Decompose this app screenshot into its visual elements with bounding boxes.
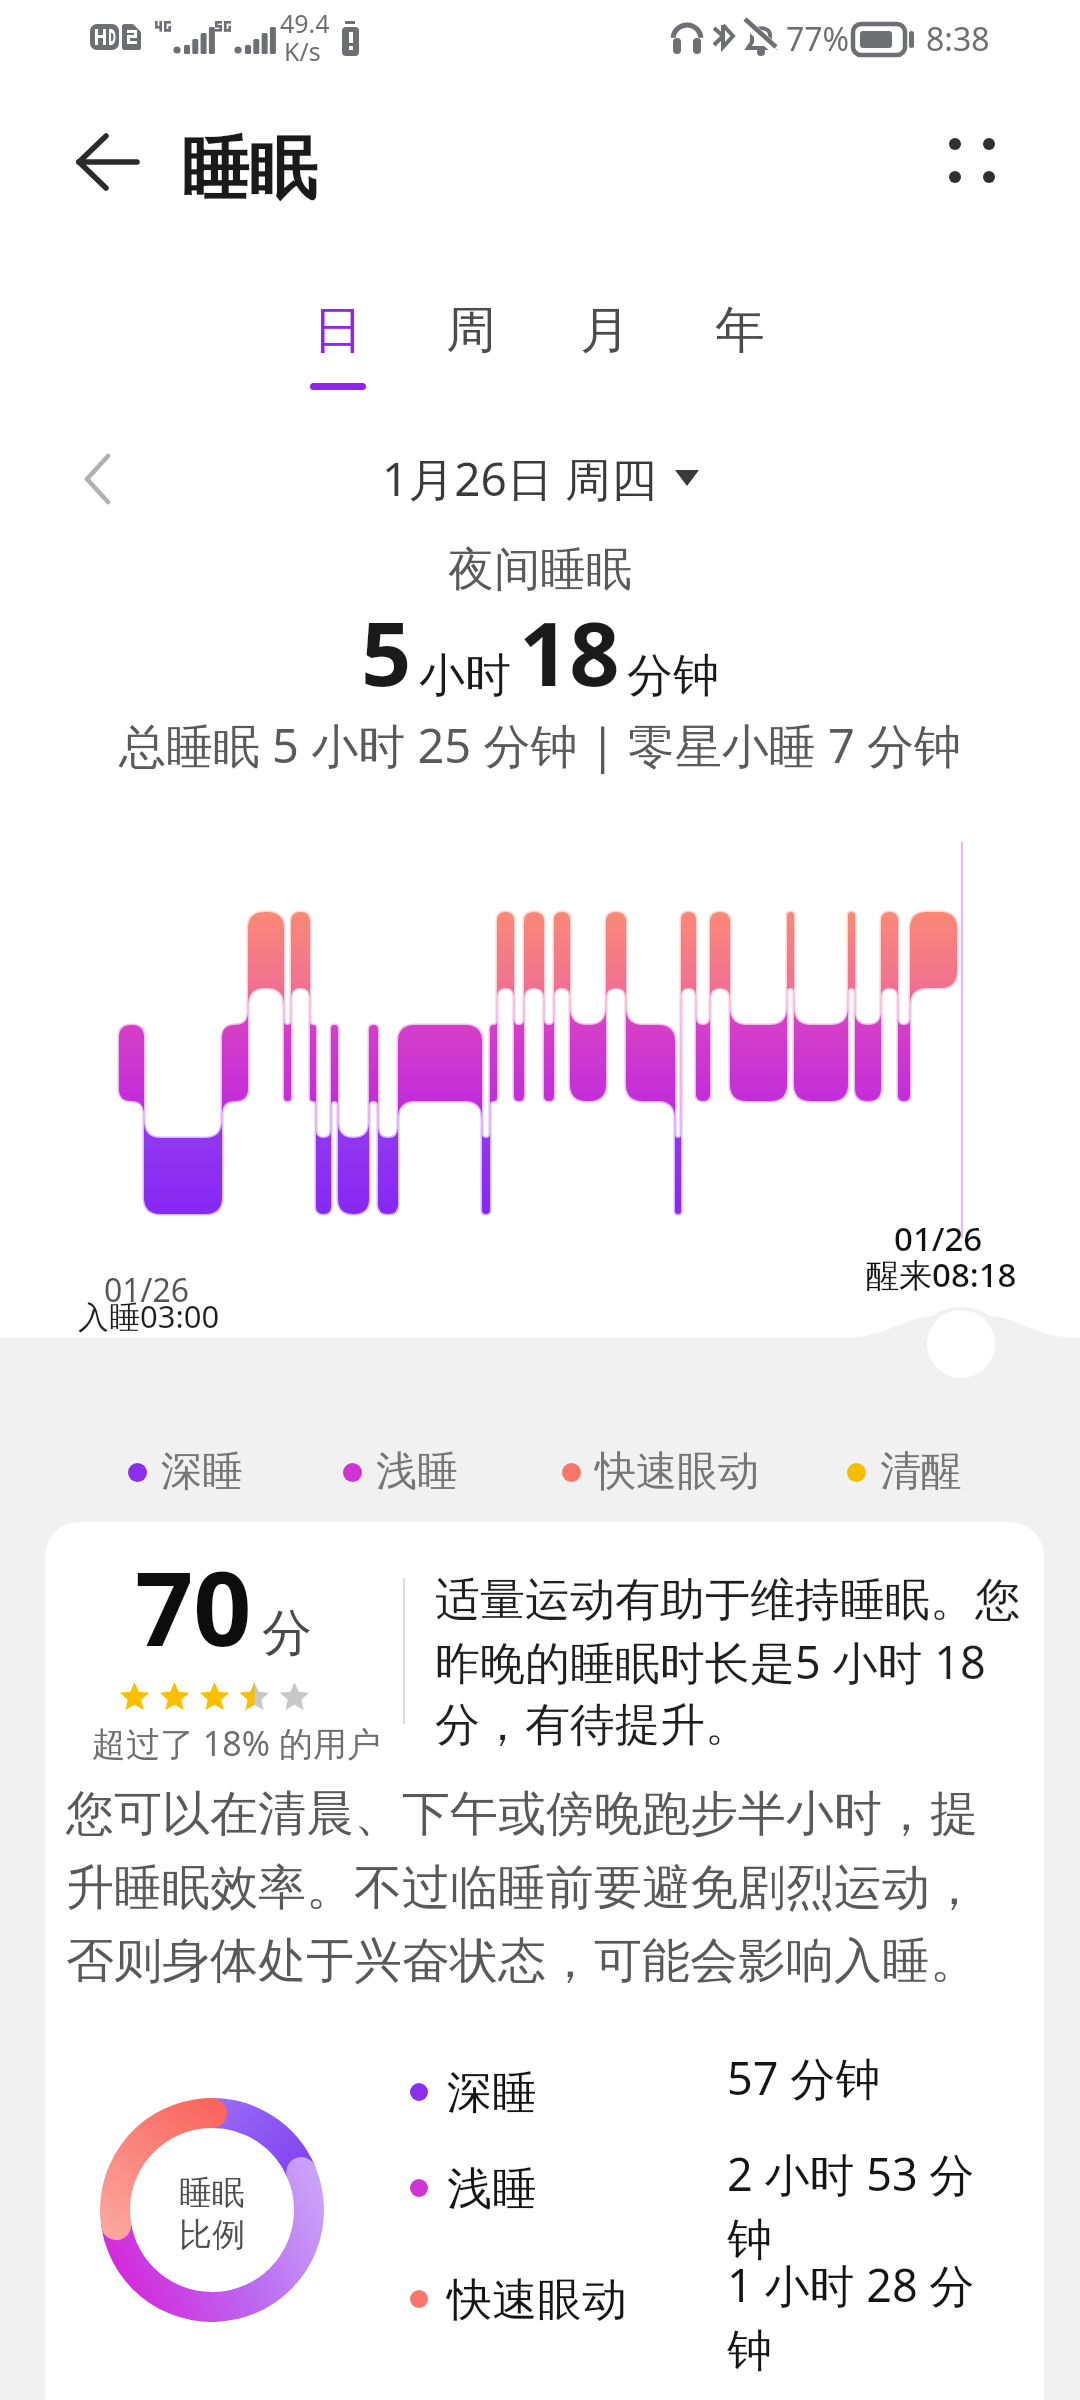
button[interactable]: 1月26日 周四 bbox=[0, 442, 1080, 514]
button[interactable]: 周 bbox=[415, 299, 527, 403]
staticText: 深睡 bbox=[161, 1446, 243, 1498]
staticText: 快速眼动 bbox=[595, 1446, 759, 1498]
staticText: 超过了 18% 的用户 bbox=[92, 1720, 381, 1766]
button[interactable]: More options bbox=[930, 122, 1016, 204]
staticText: 1 小时 28 分钟 bbox=[727, 2254, 975, 2379]
staticText: 比例 bbox=[179, 2214, 245, 2256]
staticText: 70 bbox=[135, 1537, 252, 1676]
staticText: 睡眠 bbox=[181, 127, 317, 213]
button[interactable]: 深睡 bbox=[128, 1436, 243, 1508]
staticText: 入睡03:00 bbox=[78, 1295, 220, 1337]
staticText: 周 bbox=[446, 299, 496, 362]
staticText: 01/26 bbox=[894, 1216, 983, 1261]
staticText: 8:38 bbox=[926, 17, 990, 61]
staticText: 您可以在清晨、下午或傍晚跑步半小时，提升睡眠效率。不过临睡前要避免剧烈运动，否则… bbox=[66, 1784, 1001, 1991]
button[interactable]: 浅睡 bbox=[395, 2143, 985, 2293]
staticText: 小时 bbox=[419, 647, 511, 705]
staticText: 77% bbox=[786, 17, 850, 61]
staticText: 2 小时 53 分钟 bbox=[727, 2143, 975, 2268]
staticText: 醒来08:18 bbox=[866, 1252, 1017, 1297]
staticText: 睡眠 bbox=[179, 2172, 245, 2214]
button[interactable]: 深睡 bbox=[395, 2047, 985, 2197]
staticText: 浅睡 bbox=[376, 1446, 458, 1498]
staticText: 分钟 bbox=[627, 647, 719, 705]
staticText: K/s bbox=[284, 34, 321, 68]
button[interactable]: 清醒 bbox=[847, 1436, 962, 1508]
staticText: 清醒 bbox=[880, 1446, 962, 1498]
button[interactable]: 快速眼动 bbox=[395, 2254, 985, 2400]
staticText: 快速眼动 bbox=[447, 2272, 627, 2329]
staticText: 年 bbox=[715, 299, 765, 362]
button[interactable]: Previous day bbox=[64, 440, 138, 514]
button[interactable]: 年 bbox=[684, 299, 796, 403]
staticText: 49.4 bbox=[280, 6, 330, 40]
button[interactable]: Back bbox=[70, 126, 146, 198]
button[interactable]: 月 bbox=[549, 299, 661, 403]
staticText: 夜间睡眠 bbox=[0, 541, 1080, 599]
button[interactable]: 70 bbox=[45, 1522, 1044, 2400]
button[interactable]: 日 bbox=[282, 299, 394, 403]
staticText: 深睡 bbox=[447, 2065, 537, 2122]
staticText: 1月26日 周四 bbox=[382, 447, 657, 510]
button[interactable]: 浅睡 bbox=[343, 1436, 458, 1508]
staticText: 18 bbox=[519, 592, 620, 712]
staticText: 5 bbox=[361, 592, 412, 712]
staticText: 01/26 bbox=[104, 1268, 190, 1312]
staticText: 适量运动有助于维持睡眠。您昨晚的睡眠时长是5 小时 18 分，有待提升。 bbox=[435, 1572, 1025, 1753]
staticText: 分 bbox=[262, 1602, 312, 1665]
staticText: 总睡眠 5 小时 25 分钟 | 零星小睡 7 分钟 bbox=[0, 713, 1080, 777]
staticText: 57 分钟 bbox=[727, 2047, 975, 2108]
staticText: 浅睡 bbox=[447, 2161, 537, 2218]
staticText: 月 bbox=[580, 299, 630, 362]
button[interactable]: 快速眼动 bbox=[562, 1436, 759, 1508]
staticText: 日 bbox=[313, 299, 363, 362]
